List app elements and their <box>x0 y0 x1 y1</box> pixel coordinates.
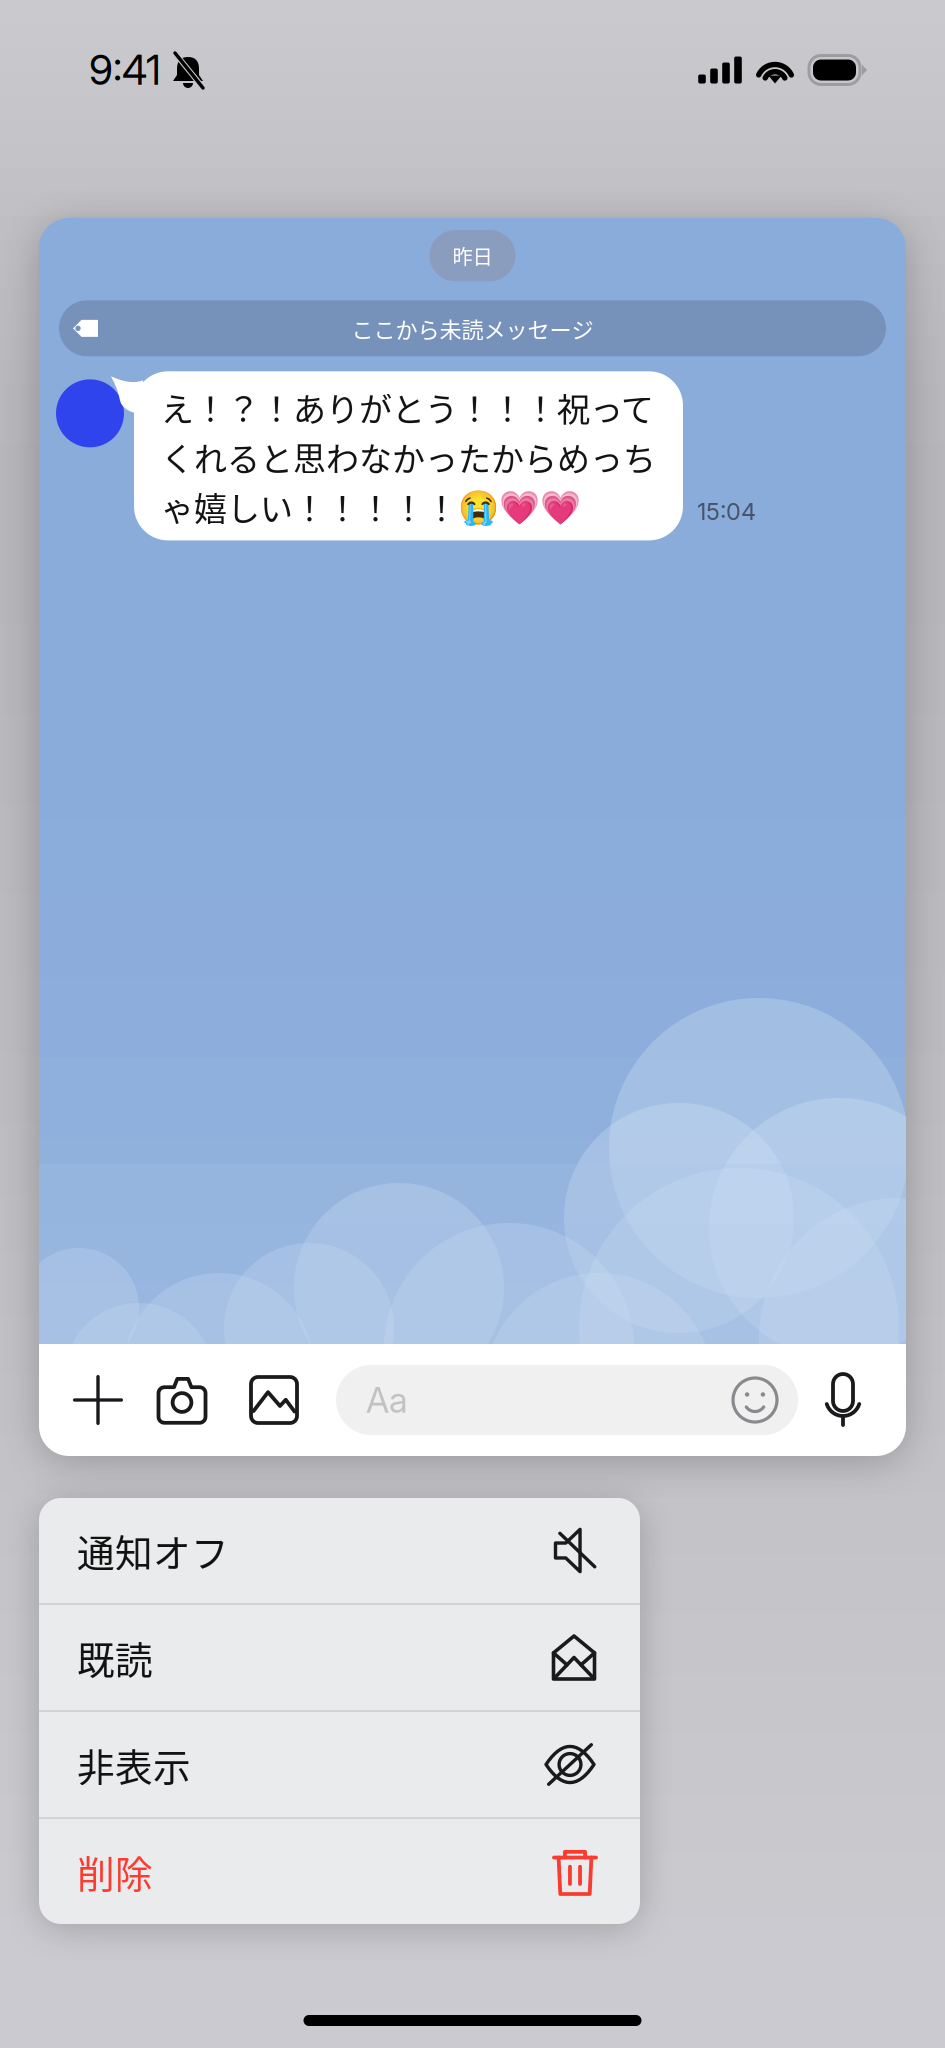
button[interactable]: 削除 <box>39 1819 640 1924</box>
button[interactable]: 既読 <box>39 1605 640 1710</box>
button[interactable]: 非表示 <box>39 1712 640 1817</box>
staticText: ここから未読メッセージ <box>351 312 593 344</box>
button[interactable]: Aa <box>336 1365 798 1435</box>
staticText: 昨日 <box>452 241 492 270</box>
button[interactable]: Camera <box>144 1358 220 1442</box>
staticText: 15:04 <box>697 497 756 526</box>
button[interactable]: 通知オフ <box>39 1498 640 1603</box>
staticText: 既読 <box>77 1630 153 1685</box>
staticText: 通知オフ <box>77 1523 229 1578</box>
staticText: 非表示 <box>77 1737 191 1792</box>
staticText: え！？！ありがとう！！！祝って くれると思わなかったからめっち ゃ嬉しい！！！！… <box>161 383 656 530</box>
button[interactable]: Photo library <box>236 1358 312 1442</box>
staticText: 9:41 <box>89 45 161 95</box>
staticText: 削除 <box>77 1844 153 1899</box>
button[interactable]: Add attachment <box>60 1358 136 1442</box>
staticText: Aa <box>366 1379 408 1421</box>
button[interactable]: Voice message <box>811 1358 875 1442</box>
